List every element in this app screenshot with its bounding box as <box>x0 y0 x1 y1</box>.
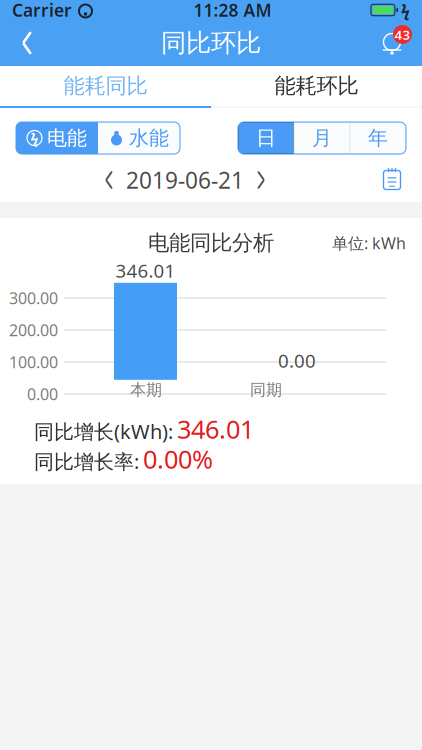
button[interactable]: 水能 <box>98 122 180 154</box>
staticText: 346.01 <box>177 412 254 446</box>
staticText: 同比增长率: <box>34 448 139 475</box>
button[interactable]: Next day <box>244 163 278 197</box>
staticText: ϟ <box>401 0 410 21</box>
button[interactable]: 能耗同比 <box>0 66 211 106</box>
staticText: 水能 <box>129 126 169 150</box>
staticText: 0.00 <box>27 383 58 405</box>
button[interactable]: ϟ <box>16 122 98 154</box>
staticText: 2019-06-21 <box>126 165 244 195</box>
staticText: 月 <box>312 126 332 150</box>
staticText: ϟ <box>30 128 38 148</box>
staticText: 电能同比分析 <box>148 230 274 256</box>
staticText: 同比增长(kWh): <box>34 418 173 445</box>
staticText: 单位: kWh <box>332 232 406 254</box>
staticText: 11:28 AM <box>193 0 271 21</box>
staticText: 300.00 <box>9 287 58 309</box>
staticText: 同比环比 <box>161 27 261 58</box>
button[interactable]: 能耗环比 <box>211 66 422 106</box>
staticText: 0.00% <box>143 442 213 476</box>
staticText: 日 <box>256 126 276 150</box>
staticText: 电能 <box>47 126 87 150</box>
button[interactable]: Back <box>6 21 48 65</box>
staticText: 100.00 <box>9 351 58 373</box>
button[interactable]: Previous day <box>92 163 126 197</box>
button[interactable]: Notifications, 43 unread <box>368 21 416 65</box>
staticText: 能耗环比 <box>274 73 358 99</box>
button[interactable]: 日 <box>238 122 294 154</box>
button[interactable]: Pick date <box>370 160 414 200</box>
staticText: 200.00 <box>9 319 58 341</box>
button[interactable]: 年 <box>350 122 406 154</box>
staticText: 0.00 <box>278 348 316 373</box>
staticText: Carrier <box>12 0 72 21</box>
staticText: 本期 <box>130 380 162 400</box>
staticText: 能耗同比 <box>63 73 147 99</box>
staticText: 同期 <box>250 380 282 400</box>
staticText: 年 <box>368 126 388 150</box>
staticText: 346.01 <box>115 258 175 283</box>
staticText: 43 <box>394 26 410 43</box>
button[interactable]: 月 <box>294 122 350 154</box>
